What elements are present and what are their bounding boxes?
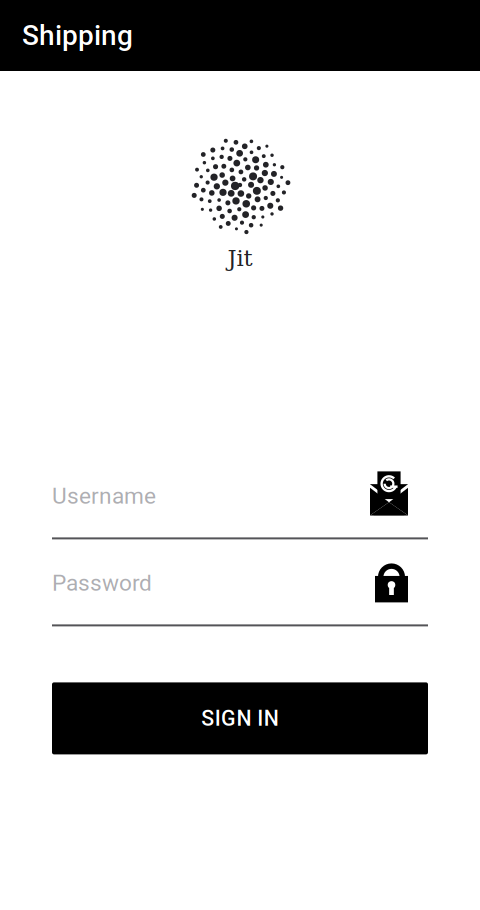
staticText: Jit — [227, 245, 252, 271]
button[interactable]: SIGN IN — [52, 682, 428, 754]
staticText: Shipping — [22, 19, 133, 52]
staticText: Password — [52, 570, 152, 596]
button[interactable]: Username — [52, 484, 428, 539]
button[interactable]: Password — [52, 571, 428, 626]
staticText: Username — [52, 483, 156, 509]
staticText: SIGN IN — [201, 706, 279, 731]
